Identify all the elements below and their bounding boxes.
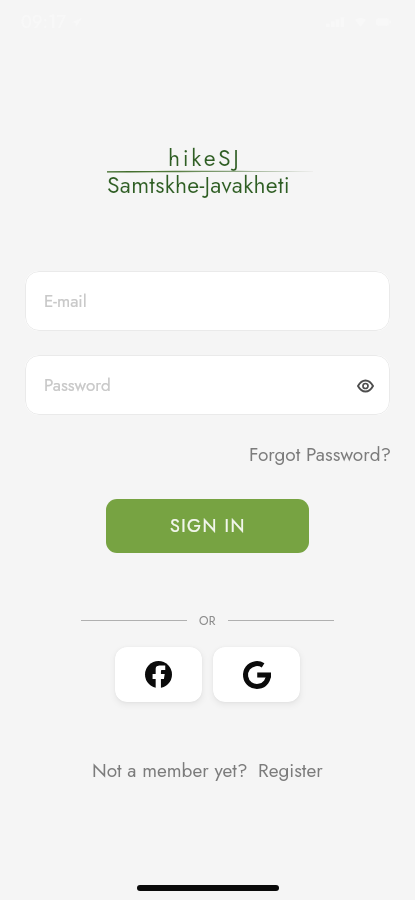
button[interactable]: Show password <box>351 372 379 400</box>
staticText: OR <box>199 612 216 629</box>
staticText: E-mail <box>44 289 87 314</box>
staticText: Forgot Password? <box>249 441 392 468</box>
button[interactable]: E-mail <box>25 271 390 331</box>
button[interactable]: Sign in with Google <box>213 647 300 702</box>
staticText: Not a member yet? <box>92 757 248 784</box>
staticText: Register <box>258 757 323 784</box>
button[interactable]: SIGN IN <box>106 499 309 553</box>
button[interactable]: Password <box>25 355 390 415</box>
button[interactable]: Forgot Password? <box>249 441 392 468</box>
button[interactable]: Sign in with Facebook <box>115 647 202 702</box>
staticText: Samtskhe-Javakheti <box>107 168 290 201</box>
staticText: Password <box>44 373 111 398</box>
staticText: hikeSJ <box>168 141 242 174</box>
button[interactable]: Register <box>258 757 323 784</box>
staticText: SIGN IN <box>170 513 246 539</box>
